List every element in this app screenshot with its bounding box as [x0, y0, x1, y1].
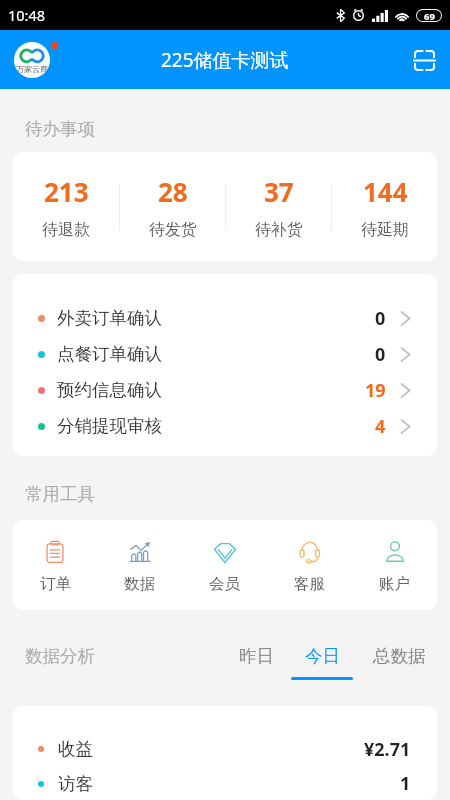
staticText: 10:48 — [8, 5, 46, 25]
button[interactable]: 28 — [120, 152, 225, 261]
button[interactable]: 订单 — [13, 520, 97, 610]
button[interactable]: Shop — [11, 38, 59, 82]
button[interactable]: 数据 — [97, 520, 182, 610]
staticText: 19 — [365, 378, 386, 403]
button[interactable]: 144 — [332, 152, 437, 261]
staticText: 总数据 — [373, 645, 426, 667]
staticText: 点餐订单确认 — [57, 343, 162, 365]
button[interactable]: 账户 — [352, 520, 437, 610]
staticText: 144 — [363, 174, 408, 209]
staticText: 4 — [375, 414, 386, 439]
staticText: 账户 — [379, 574, 410, 594]
staticText: 收益 — [58, 738, 93, 760]
button[interactable]: 昨日 — [225, 640, 287, 688]
staticText: 待办事项 — [25, 118, 95, 140]
staticText: 1 — [400, 771, 411, 796]
button[interactable]: 外卖订单确认 — [13, 300, 437, 336]
button[interactable]: 点餐订单确认 — [13, 336, 437, 372]
button[interactable]: 访客 — [13, 767, 437, 800]
staticText: 会员 — [209, 574, 240, 594]
staticText: 外卖订单确认 — [57, 307, 162, 329]
staticText: 访客 — [58, 773, 93, 795]
staticText: 待退款 — [42, 220, 90, 240]
button[interactable]: Scan QR code — [406, 42, 442, 78]
button[interactable]: 总数据 — [366, 640, 432, 688]
button[interactable]: 预约信息确认 — [13, 372, 437, 408]
button[interactable]: 213 — [13, 152, 119, 261]
staticText: 分销提现审核 — [57, 415, 162, 437]
staticText: 0 — [375, 306, 386, 331]
staticText: 预约信息确认 — [57, 379, 162, 401]
button[interactable]: 今日 — [291, 640, 353, 688]
staticText: 万家云商 — [16, 64, 48, 74]
staticText: ¥2.71 — [364, 737, 411, 762]
staticText: 今日 — [305, 645, 340, 667]
staticText: 常用工具 — [25, 483, 95, 505]
staticText: 225储值卡测试 — [161, 47, 289, 73]
staticText: 37 — [264, 174, 294, 209]
staticText: 昨日 — [239, 645, 274, 667]
staticText: 数据 — [124, 574, 155, 594]
button[interactable]: 37 — [226, 152, 331, 261]
staticText: 数据分析 — [25, 645, 95, 667]
staticText: 28 — [158, 174, 188, 209]
staticText: 0 — [375, 342, 386, 367]
button[interactable]: 客服 — [267, 520, 352, 610]
staticText: 213 — [44, 174, 89, 209]
staticText: 待发货 — [149, 220, 197, 240]
staticText: 客服 — [294, 574, 325, 594]
staticText: 待补货 — [255, 220, 303, 240]
button[interactable]: 会员 — [182, 520, 267, 610]
staticText: 69 — [424, 10, 435, 21]
button[interactable]: 分销提现审核 — [13, 408, 437, 444]
button[interactable]: 收益 — [13, 731, 437, 767]
staticText: 订单 — [40, 574, 71, 594]
staticText: 待延期 — [361, 220, 409, 240]
